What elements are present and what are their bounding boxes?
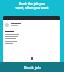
button[interactable]: Book job bbox=[0, 62, 64, 72]
staticText: Book the job you want, when you want bbox=[1, 2, 63, 9]
staticText: Book job bbox=[24, 65, 41, 70]
button[interactable] bbox=[3, 16, 60, 62]
